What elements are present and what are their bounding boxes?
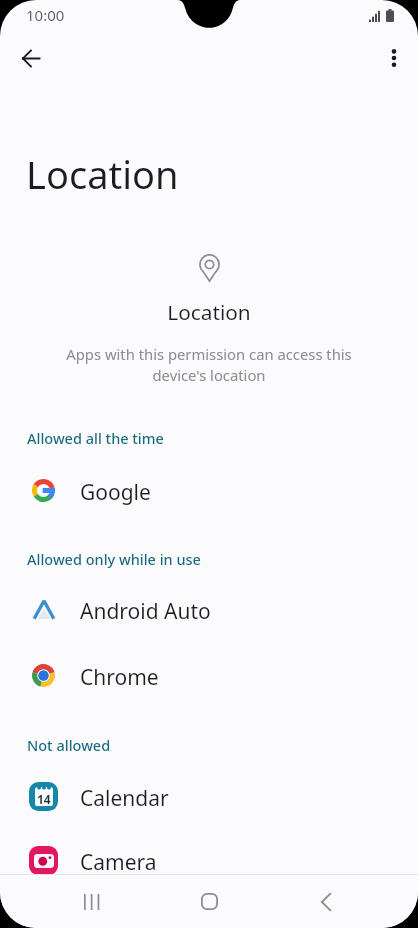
button[interactable]: Chrome bbox=[0, 643, 418, 707]
staticText: Android Auto bbox=[80, 597, 211, 626]
button[interactable]: Navigate up bbox=[8, 35, 54, 81]
staticText: Location bbox=[0, 298, 418, 326]
staticText: Camera bbox=[80, 848, 157, 877]
staticText: Calendar bbox=[80, 784, 169, 813]
staticText: 10:00 bbox=[26, 5, 65, 25]
staticText: 14 bbox=[37, 791, 51, 807]
button[interactable]: 14 bbox=[0, 764, 418, 828]
staticText: Google bbox=[80, 478, 151, 507]
button[interactable]: Google bbox=[0, 458, 418, 522]
staticText: Allowed only while in use bbox=[27, 549, 201, 569]
staticText: Location bbox=[26, 148, 179, 200]
staticText: Apps with this permission can access thi… bbox=[62, 344, 356, 385]
button[interactable]: Recent apps bbox=[64, 875, 118, 928]
button[interactable]: Back bbox=[299, 875, 353, 928]
button[interactable]: Camera bbox=[0, 828, 418, 892]
staticText: Chrome bbox=[80, 663, 159, 692]
staticText: Not allowed bbox=[27, 735, 111, 755]
button[interactable]: More options bbox=[371, 35, 417, 81]
button[interactable]: Home bbox=[182, 875, 236, 928]
staticText: Allowed all the time bbox=[27, 428, 164, 448]
button[interactable]: Android Auto bbox=[0, 577, 418, 641]
